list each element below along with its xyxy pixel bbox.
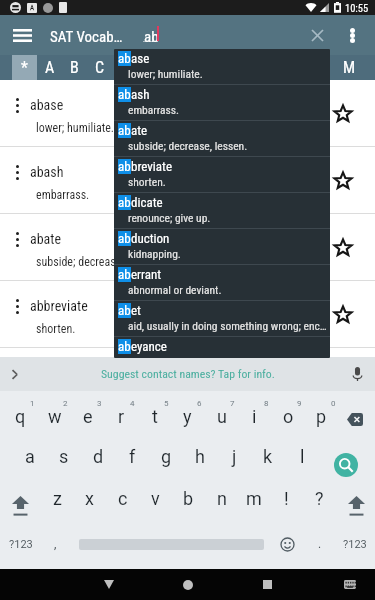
button[interactable]: ab (114, 85, 330, 120)
button[interactable]: h (183, 435, 217, 477)
staticText: 2 (63, 399, 68, 408)
button[interactable]: v (139, 477, 172, 519)
button[interactable]: q (4, 391, 37, 435)
button[interactable]: Shift (337, 485, 375, 527)
button[interactable]: ab (114, 265, 330, 300)
button[interactable]: ab (114, 229, 330, 264)
button[interactable]: Expand suggestions (2, 362, 26, 386)
button[interactable]: p (305, 391, 338, 435)
button[interactable]: Add to favourites (325, 214, 360, 280)
button[interactable]: e (71, 391, 104, 435)
button[interactable]: ab (114, 121, 330, 156)
button[interactable]: Recent apps (245, 569, 290, 600)
button[interactable]: k (251, 435, 285, 477)
button[interactable]: a (13, 435, 47, 477)
staticText: ab (118, 267, 131, 282)
button[interactable]: ab (114, 301, 330, 336)
button[interactable]: Shift (1, 485, 40, 527)
button[interactable]: x (73, 477, 106, 519)
button[interactable]: . (306, 519, 334, 569)
button[interactable]: l (285, 435, 319, 477)
button[interactable]: i (238, 391, 271, 435)
button[interactable]: Navigation drawer (2, 15, 42, 55)
button[interactable]: M (337, 55, 362, 80)
button[interactable]: j (217, 435, 251, 477)
staticText: abash (30, 164, 64, 180)
button[interactable]: Emoji (271, 519, 303, 569)
button[interactable]: Switch keyboard (330, 569, 370, 600)
button[interactable]: r (105, 391, 138, 435)
button[interactable]: L (312, 55, 337, 80)
button[interactable]: Home (165, 569, 210, 600)
button[interactable]: G (187, 55, 212, 80)
staticText: D (120, 58, 130, 77)
staticText: ab (118, 303, 131, 318)
button[interactable]: B (62, 55, 87, 80)
button[interactable]: Add to favourites (325, 281, 360, 347)
staticText: m (246, 488, 262, 509)
staticText: abbreviate (30, 298, 88, 314)
button[interactable]: ab (114, 157, 330, 192)
button[interactable]: abbreviate (0, 281, 375, 347)
button[interactable]: * (12, 55, 37, 80)
staticText: 4 (130, 399, 135, 408)
button[interactable]: m (237, 477, 270, 519)
staticText: ?123 (9, 538, 33, 551)
button[interactable]: ? (303, 477, 336, 519)
button[interactable]: ?123 (0, 519, 41, 569)
button[interactable]: Voice input (345, 362, 369, 386)
button[interactable]: g (149, 435, 183, 477)
button[interactable]: w (38, 391, 71, 435)
button[interactable]: o (272, 391, 305, 435)
staticText: h (195, 446, 205, 467)
button[interactable]: f (115, 435, 149, 477)
button[interactable]: b (172, 477, 205, 519)
staticText: ash (131, 87, 150, 102)
button[interactable]: Clear search (297, 15, 337, 55)
button[interactable]: abate (0, 214, 375, 280)
button[interactable]: Back (86, 569, 131, 600)
staticText: e (83, 406, 93, 427)
button[interactable]: ?123 (334, 519, 375, 569)
button[interactable]: u (205, 391, 238, 435)
staticText: ab (118, 51, 131, 66)
button[interactable]: d (81, 435, 115, 477)
button[interactable]: n (205, 477, 238, 519)
button[interactable]: ab (114, 193, 330, 228)
button[interactable]: z (41, 477, 74, 519)
button[interactable]: Add to favourites (325, 80, 360, 146)
button[interactable]: abash (0, 147, 375, 213)
staticText: f (129, 446, 136, 467)
button[interactable]: , (41, 519, 69, 569)
button[interactable]: Space (69, 519, 272, 569)
staticText: k (263, 446, 273, 467)
button[interactable]: s (47, 435, 81, 477)
button[interactable]: E (137, 55, 162, 80)
button[interactable]: Backspace (336, 397, 373, 441)
button[interactable]: Search (323, 449, 369, 481)
button[interactable]: Add to favourites (325, 147, 360, 213)
staticText: abnormal or deviant. (128, 283, 222, 296)
button[interactable]: ! (270, 477, 303, 519)
button[interactable]: F (162, 55, 187, 80)
button[interactable]: ab (114, 49, 330, 84)
button[interactable]: c (106, 477, 139, 519)
button[interactable]: More options (336, 15, 369, 55)
button[interactable]: y (171, 391, 204, 435)
button[interactable]: t (138, 391, 171, 435)
staticText: s (59, 446, 69, 467)
button[interactable]: ab (114, 337, 330, 358)
staticText: G (195, 58, 205, 77)
button[interactable]: abase (0, 80, 375, 146)
button[interactable]: D (112, 55, 137, 80)
staticText: 0 (331, 399, 336, 408)
staticText: q (15, 406, 26, 427)
button[interactable]: A (37, 55, 62, 80)
button[interactable]: C (87, 55, 112, 80)
